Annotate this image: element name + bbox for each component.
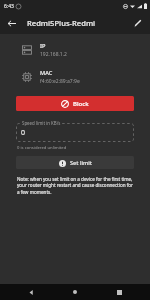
staticText: Note: when you set limit on a device for… (17, 176, 136, 196)
button[interactable]: Back (3, 15, 20, 32)
staticText: IP (40, 42, 46, 50)
button[interactable]: 0 (16, 123, 134, 142)
staticText: 192.168.1.2 (40, 51, 67, 58)
button[interactable]: Back (18, 284, 44, 300)
staticText: Set limit (70, 159, 92, 167)
staticText: 0 (21, 128, 26, 138)
button[interactable]: Edit (130, 15, 146, 31)
staticText: 0 is considered unlimited (17, 145, 67, 151)
button[interactable]: MAC (0, 67, 150, 87)
staticText: Redmi5Plus-Redmi (27, 18, 96, 28)
button[interactable]: Block (16, 96, 134, 111)
button[interactable]: Set limit (16, 156, 134, 169)
staticText: MAC (40, 69, 53, 77)
staticText: 6:43 (4, 3, 14, 10)
staticText: f4:60:e2:89:a7:9e (40, 78, 80, 85)
button[interactable]: Recents (106, 284, 132, 300)
button[interactable]: Home (62, 284, 88, 300)
staticText: Block (73, 100, 89, 108)
button[interactable]: IP (0, 40, 150, 60)
staticText: Speed limit in KB/s (22, 120, 61, 126)
